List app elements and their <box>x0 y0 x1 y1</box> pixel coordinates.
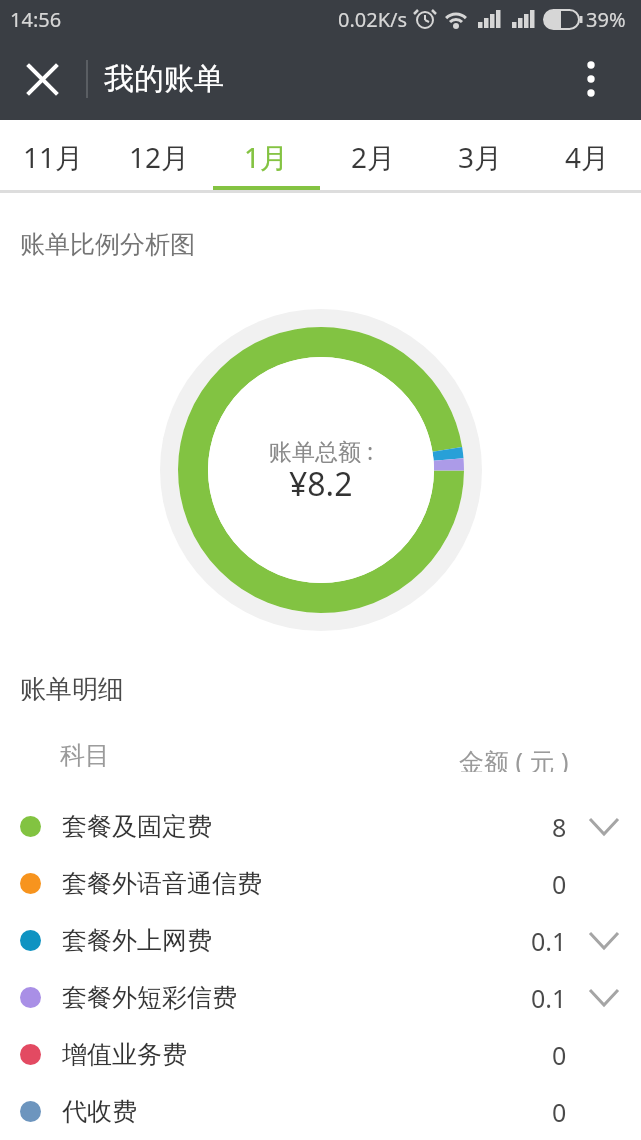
staticText: 账单总额 : <box>269 435 374 463</box>
staticText: 0 <box>552 1095 567 1129</box>
staticText: 套餐外语音通信费 <box>62 868 262 899</box>
button[interactable]: 2月 <box>320 120 427 193</box>
staticText: 3月 <box>458 138 503 176</box>
button[interactable]: 4月 <box>534 120 641 193</box>
staticText: ¥8.2 <box>289 462 353 502</box>
button[interactable]: 套餐外上网费 <box>0 912 641 969</box>
staticText: 账单明细 <box>20 673 124 701</box>
button[interactable]: 代收费 <box>0 1083 641 1140</box>
staticText: 增值业务费 <box>62 1039 187 1070</box>
staticText: 12月 <box>129 138 190 176</box>
staticText: 套餐外短彩信费 <box>62 982 237 1013</box>
staticText: 14:56 <box>10 6 62 33</box>
button[interactable]: 1月 <box>213 120 320 193</box>
staticText: 0 <box>552 1038 567 1072</box>
button[interactable]: 3月 <box>427 120 534 193</box>
staticText: 1月 <box>244 138 289 176</box>
staticText: 0 <box>552 867 567 901</box>
button[interactable]: 套餐及固定费 <box>0 798 641 855</box>
button[interactable] <box>14 51 70 107</box>
staticText: 8 <box>552 810 567 844</box>
staticText: 账单比例分析图 <box>20 229 195 257</box>
staticText: 0.1 <box>531 924 567 958</box>
staticText: 11月 <box>23 138 84 176</box>
staticText: 科目 <box>60 740 110 768</box>
button[interactable]: 套餐外语音通信费 <box>0 855 641 912</box>
staticText: 代收费 <box>62 1096 137 1127</box>
staticText: 0.02K/s <box>338 6 408 33</box>
staticText: 套餐及固定费 <box>62 811 212 842</box>
button[interactable]: 12月 <box>106 120 213 193</box>
button[interactable] <box>566 51 616 107</box>
button[interactable]: 11月 <box>0 120 106 193</box>
staticText: 39% <box>586 6 626 33</box>
staticText: 2月 <box>351 138 396 176</box>
button[interactable]: 增值业务费 <box>0 1026 641 1083</box>
staticText: 4月 <box>565 138 610 176</box>
staticText: 套餐外上网费 <box>62 925 212 956</box>
staticText: 金额 ( 元 ) <box>459 744 569 772</box>
staticText: 0.1 <box>531 981 567 1015</box>
button[interactable]: 套餐外短彩信费 <box>0 969 641 1026</box>
staticText: 我的账单 <box>104 60 224 98</box>
